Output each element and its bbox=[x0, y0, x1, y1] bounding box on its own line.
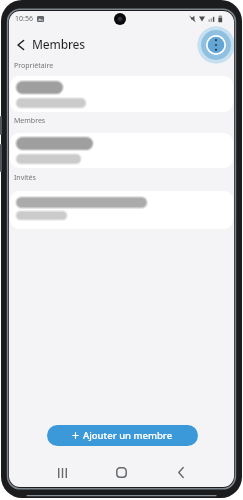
button[interactable] bbox=[168, 460, 193, 485]
button[interactable] bbox=[10, 191, 233, 229]
button[interactable] bbox=[197, 26, 234, 64]
staticText: Ajouter un membre bbox=[83, 429, 173, 442]
button[interactable] bbox=[10, 133, 233, 168]
staticText: Invités bbox=[14, 173, 36, 183]
staticText: Membres bbox=[32, 36, 85, 52]
staticText: Propriétaire bbox=[14, 61, 54, 71]
staticText: Membres bbox=[14, 116, 46, 126]
staticText: 10:56 bbox=[15, 14, 33, 24]
button[interactable] bbox=[50, 460, 75, 485]
button[interactable]: Ajouter un membre bbox=[47, 425, 198, 446]
button[interactable] bbox=[11, 35, 31, 55]
button[interactable] bbox=[109, 460, 134, 485]
button[interactable] bbox=[10, 76, 233, 112]
